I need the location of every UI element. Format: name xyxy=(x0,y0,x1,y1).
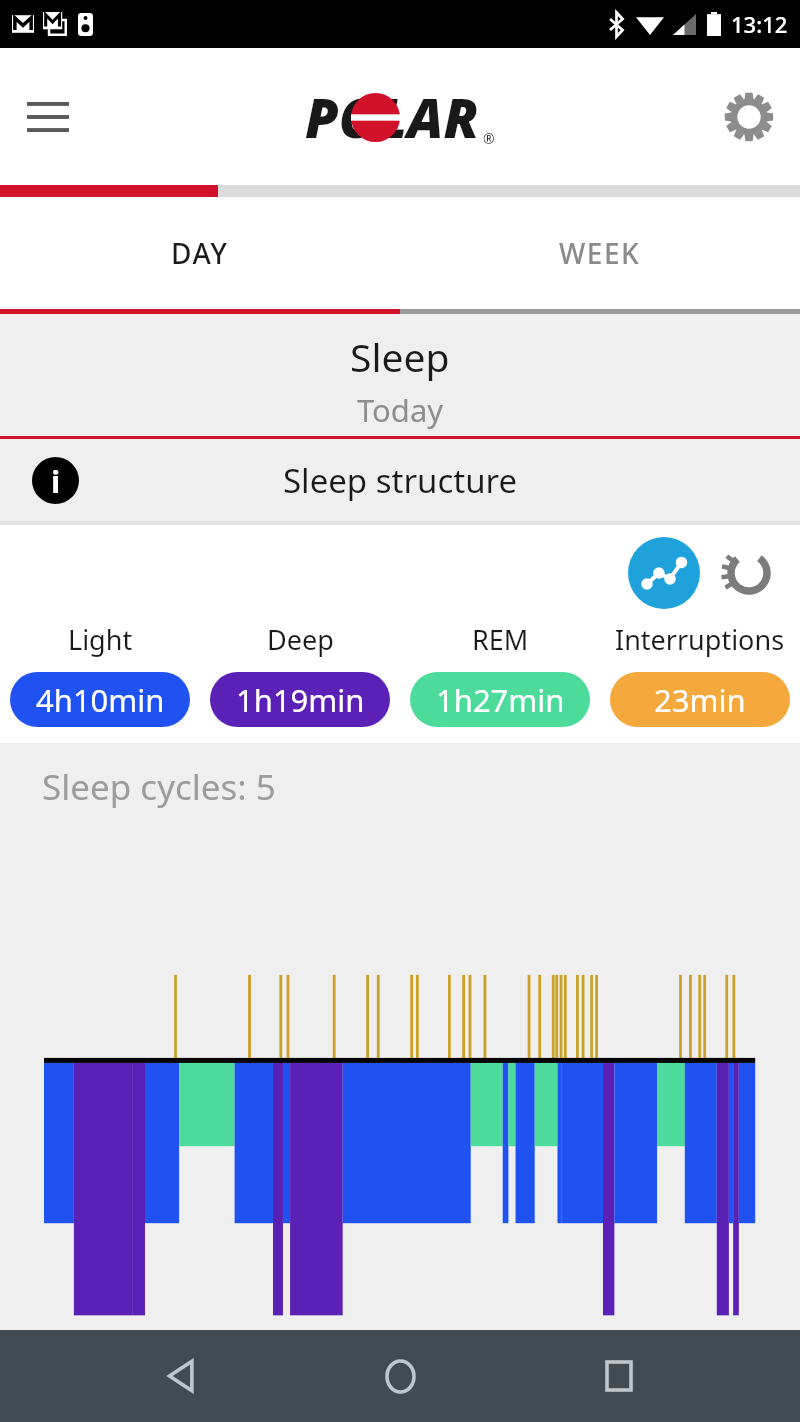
staticText: Sleep cycles: 5 xyxy=(42,763,276,811)
staticText: Interruptions xyxy=(615,621,785,658)
button[interactable]: 4h10min xyxy=(10,672,190,727)
button[interactable]: 1h19min xyxy=(210,672,390,727)
button[interactable]: 23min xyxy=(610,672,790,727)
button[interactable]: Settings xyxy=(720,88,778,146)
button[interactable]: Recent apps xyxy=(581,1338,657,1414)
staticText: 1h19min xyxy=(236,679,365,721)
staticText: 1h27min xyxy=(436,679,565,721)
button[interactable]: Back xyxy=(143,1338,219,1414)
staticText: 23min xyxy=(654,679,746,721)
button[interactable]: Menu xyxy=(20,89,76,145)
staticText: Sleep structure xyxy=(283,458,518,503)
button[interactable]: i xyxy=(0,439,800,521)
button[interactable]: Sleep stages chart xyxy=(628,537,700,609)
staticText: Today xyxy=(357,389,444,431)
staticText: Deep xyxy=(267,621,334,658)
button[interactable]: DAY xyxy=(0,197,400,309)
staticText: ® xyxy=(483,129,495,148)
button[interactable]: Sleep cycles chart xyxy=(720,544,778,602)
staticText: i xyxy=(51,460,61,502)
staticText: REM xyxy=(472,621,529,658)
staticText: WEEK xyxy=(559,234,641,272)
button[interactable]: 1h27min xyxy=(410,672,590,727)
staticText: DAY xyxy=(171,234,229,272)
staticText: Sleep xyxy=(350,330,450,383)
staticText: 13:12 xyxy=(731,9,788,39)
button[interactable]: WEEK xyxy=(400,197,800,309)
staticText: POLAR xyxy=(305,80,479,154)
staticText: 4h10min xyxy=(36,679,165,721)
button[interactable]: Home xyxy=(362,1338,438,1414)
staticText: Light xyxy=(68,621,133,658)
